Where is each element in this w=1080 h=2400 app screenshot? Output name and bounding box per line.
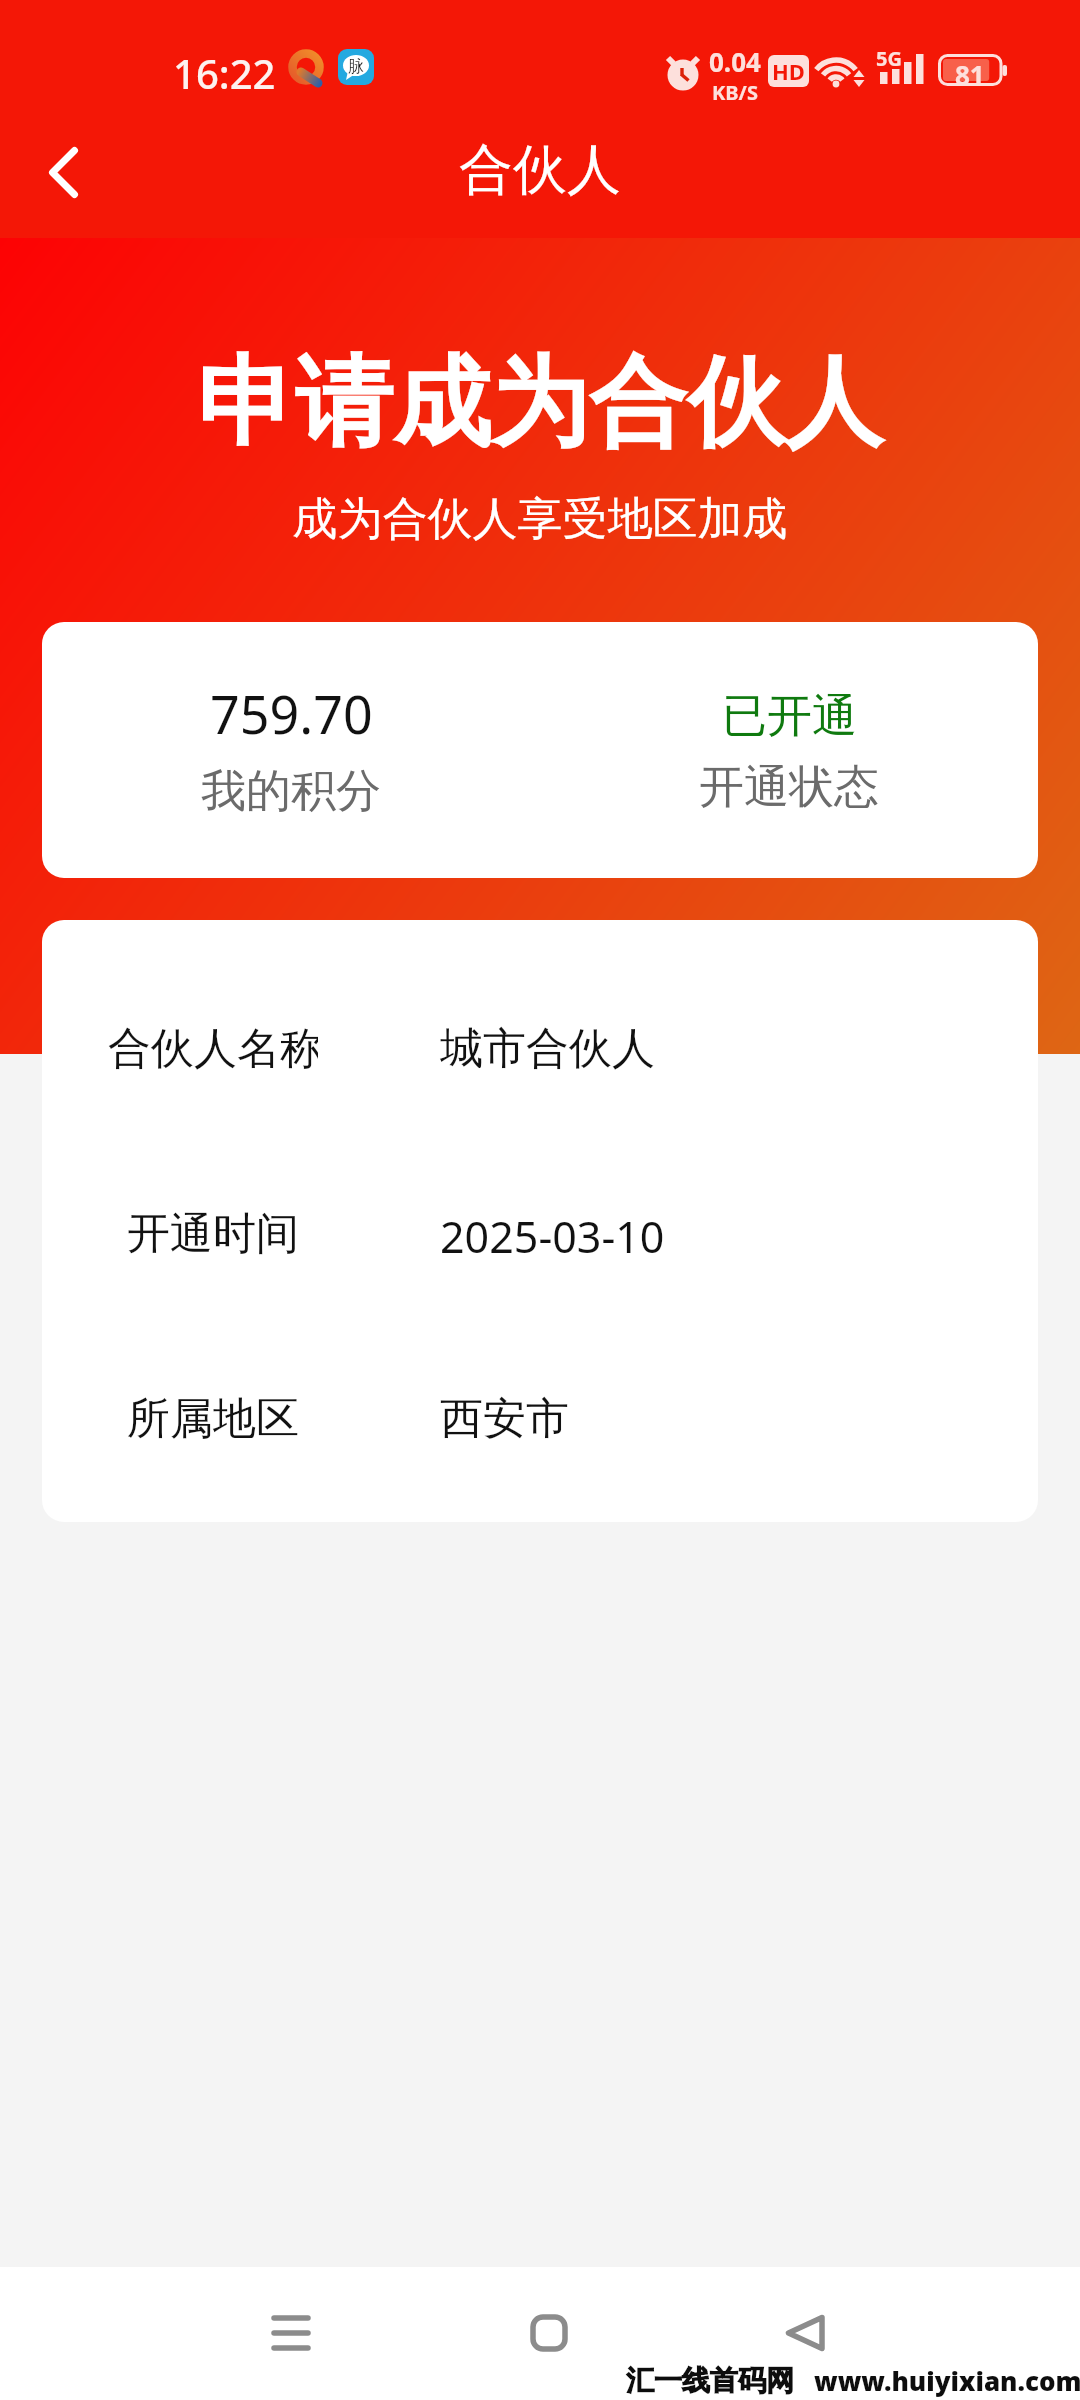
button[interactable]: 759.70: [42, 622, 1038, 878]
staticText: 西安市: [440, 1392, 569, 1446]
staticText: 合伙人: [459, 136, 621, 204]
staticText: 汇一线首码网: [626, 2363, 794, 2398]
staticText: 所属地区: [127, 1392, 299, 1446]
staticText: 脉: [348, 57, 364, 77]
staticText: KB/S: [712, 79, 758, 106]
staticText: 开通时间: [127, 1207, 299, 1261]
staticText: 已开通: [722, 688, 857, 745]
staticText: 81: [955, 57, 985, 89]
staticText: 759.70: [210, 678, 373, 749]
staticText: 2025-03-10: [440, 1207, 665, 1266]
staticText: 0.04: [709, 44, 761, 79]
staticText: 申请成为合伙人: [0, 342, 1080, 465]
staticText: 我的积分: [201, 763, 381, 820]
button[interactable]: Recent apps: [241, 2283, 341, 2383]
button[interactable]: Home: [499, 2283, 599, 2383]
button[interactable]: Back: [11, 120, 115, 224]
staticText: www.huiyixian.com: [814, 2363, 1080, 2398]
staticText: 开通状态: [699, 759, 879, 816]
staticText: 5G: [876, 45, 902, 72]
staticText: 合伙人名称: [108, 1022, 318, 1076]
button[interactable]: Back: [755, 2283, 855, 2383]
staticText: 16:22: [173, 46, 276, 100]
staticText: 成为合伙人享受地区加成: [0, 491, 1080, 548]
staticText: 城市合伙人: [440, 1022, 655, 1076]
button[interactable]: 合伙人名称: [42, 920, 1038, 1522]
staticText: HD: [772, 56, 805, 86]
